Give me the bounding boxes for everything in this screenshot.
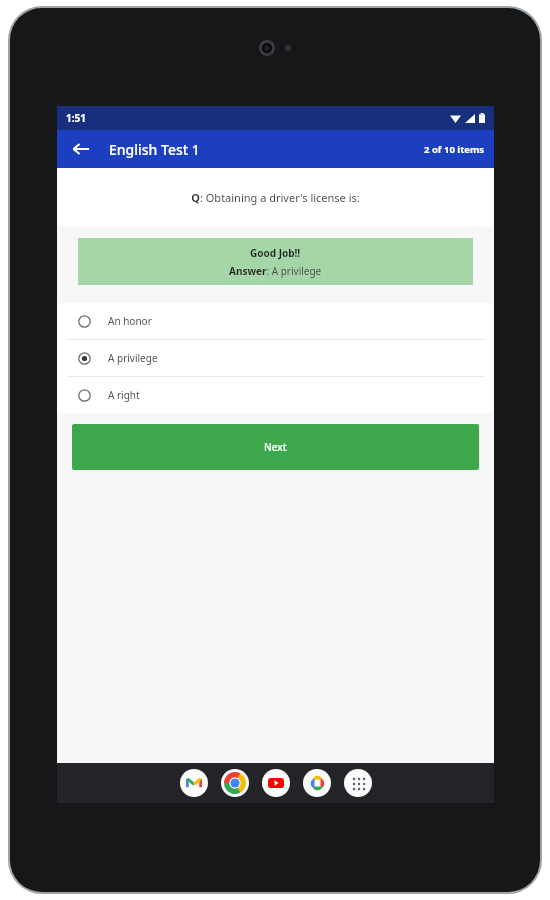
button[interactable]: A right	[57, 377, 494, 413]
button[interactable]: YouTube	[262, 769, 290, 797]
staticText: A privilege	[108, 351, 158, 365]
button[interactable]: A privilege	[57, 340, 494, 376]
staticText: 1:51	[66, 111, 86, 125]
staticText: Next	[264, 440, 287, 454]
staticText: Good Job!!	[250, 246, 301, 260]
staticText: English Test 1	[109, 140, 200, 159]
button[interactable]: All apps	[344, 769, 372, 797]
button[interactable]: Photos	[303, 769, 331, 797]
button[interactable]: An honor	[57, 303, 494, 339]
staticText: An honor	[108, 314, 152, 328]
staticText: Q: Obtaining a driver's license is:	[191, 190, 360, 205]
staticText: 2 of 10 items	[424, 143, 484, 156]
button[interactable]: Chrome	[221, 769, 249, 797]
button[interactable]: Next	[72, 424, 479, 470]
button[interactable]: Back	[65, 133, 97, 165]
staticText: Answer: A privilege	[229, 264, 322, 278]
button[interactable]: Gmail	[180, 769, 208, 797]
staticText: A right	[108, 388, 140, 402]
